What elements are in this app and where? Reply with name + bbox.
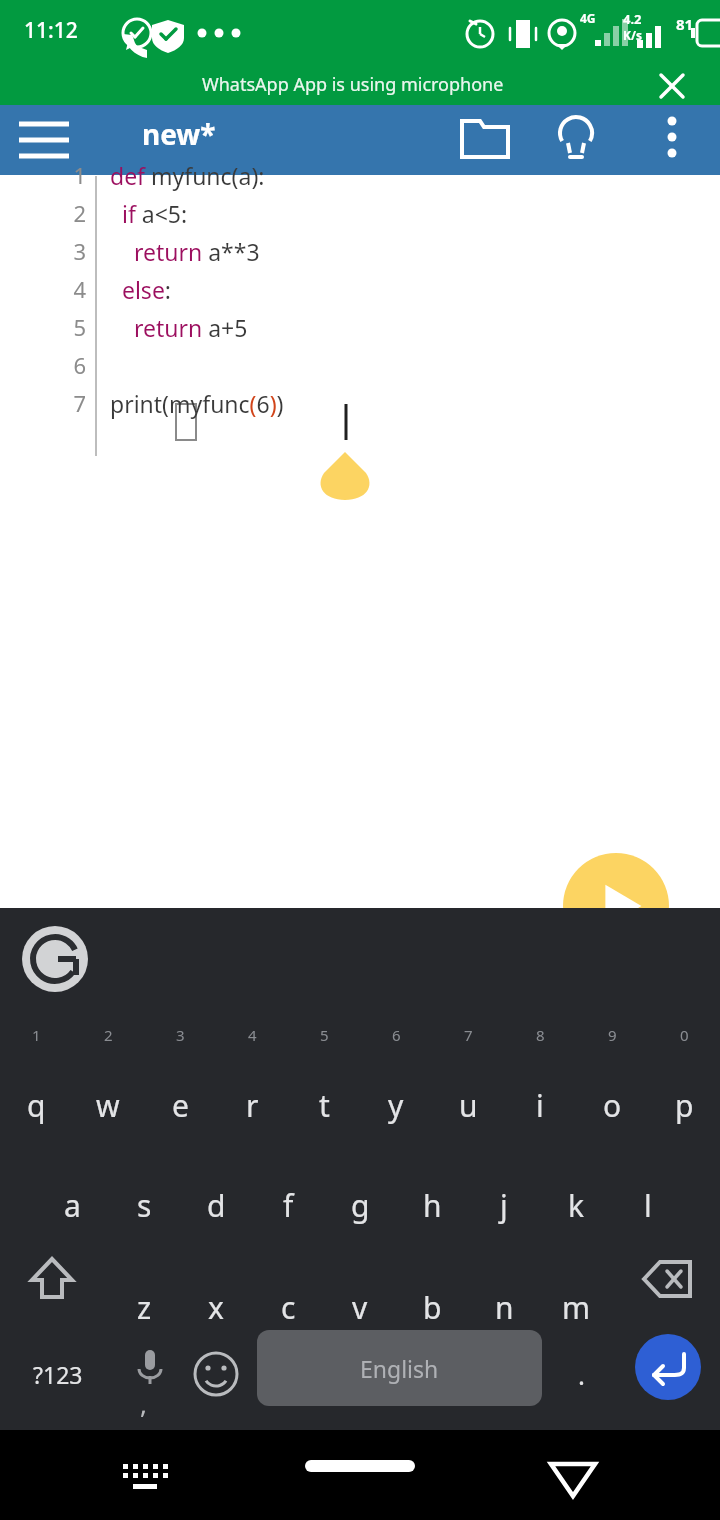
button[interactable]: Hide keyboard: [112, 1442, 178, 1508]
button[interactable]: b: [396, 1267, 468, 1347]
button[interactable]: q: [0, 1065, 72, 1145]
button[interactable]: y: [360, 1065, 432, 1145]
staticText: l: [644, 1185, 652, 1226]
button[interactable]: c: [252, 1267, 324, 1347]
staticText: ,: [140, 1386, 147, 1421]
staticText: 8: [536, 1025, 545, 1045]
button[interactable]: Shift: [14, 1241, 90, 1317]
staticText: 1: [32, 1025, 41, 1045]
staticText: b: [423, 1287, 442, 1328]
staticText: 4: [248, 1025, 257, 1045]
button[interactable]: m: [540, 1267, 612, 1347]
button[interactable]: t: [288, 1065, 360, 1145]
staticText: i: [536, 1085, 544, 1126]
button[interactable]: z: [108, 1267, 180, 1347]
staticText: m: [562, 1287, 591, 1328]
staticText: .: [578, 1357, 585, 1392]
staticText: 7: [62, 388, 86, 418]
button[interactable]: o: [576, 1065, 648, 1145]
button[interactable]: .: [548, 1336, 614, 1412]
button[interactable]: i: [504, 1065, 576, 1145]
staticText: 5: [62, 312, 86, 342]
staticText: 6: [62, 350, 86, 380]
staticText: 6: [392, 1025, 401, 1045]
staticText: 9: [608, 1025, 617, 1045]
button[interactable]: p: [648, 1065, 720, 1145]
button[interactable]: x: [180, 1267, 252, 1347]
staticText: n: [495, 1287, 514, 1328]
button[interactable]: Menu: [14, 110, 74, 170]
staticText: u: [459, 1085, 478, 1126]
button[interactable]: Hints: [546, 105, 606, 165]
staticText: K/s: [623, 27, 642, 43]
staticText: ?123: [33, 1359, 83, 1390]
staticText: new*: [142, 115, 216, 153]
button[interactable]: n: [468, 1267, 540, 1347]
button[interactable]: English: [257, 1330, 542, 1406]
button[interactable]: Back: [540, 1442, 606, 1508]
staticText: d: [207, 1185, 226, 1226]
staticText: f: [283, 1185, 294, 1226]
staticText: 4: [62, 274, 86, 304]
staticText: s: [137, 1185, 152, 1226]
staticText: w: [96, 1085, 120, 1126]
staticText: 0: [680, 1025, 689, 1045]
button[interactable]: Home: [305, 1460, 415, 1472]
staticText: if a<5:: [110, 198, 188, 229]
staticText: c: [281, 1287, 296, 1328]
button[interactable]: Backspace: [630, 1241, 706, 1317]
button[interactable]: v: [324, 1267, 396, 1347]
button[interactable]: Run: [563, 853, 669, 959]
staticText: p: [675, 1085, 694, 1126]
button[interactable]: Voice input: [112, 1336, 188, 1412]
button[interactable]: Enter: [635, 1334, 701, 1400]
staticText: WhatsApp App is using microphone: [202, 72, 504, 97]
staticText: r: [246, 1085, 259, 1126]
staticText: j: [500, 1185, 508, 1226]
button[interactable]: s: [108, 1165, 180, 1245]
button[interactable]: f: [252, 1165, 324, 1245]
staticText: 5: [320, 1025, 329, 1045]
staticText: else:: [110, 274, 172, 305]
button[interactable]: e: [144, 1065, 216, 1145]
staticText: a: [64, 1185, 81, 1226]
staticText: e: [172, 1085, 189, 1126]
staticText: q: [27, 1085, 46, 1126]
staticText: return a**3: [110, 236, 260, 267]
staticText: 1: [62, 160, 86, 190]
button[interactable]: u: [432, 1065, 504, 1145]
button[interactable]: k: [540, 1165, 612, 1245]
staticText: 3: [62, 236, 86, 266]
staticText: z: [137, 1287, 152, 1328]
staticText: def myfunc(a):: [110, 160, 265, 191]
staticText: English: [360, 1353, 439, 1384]
staticText: 4G: [580, 10, 596, 26]
button[interactable]: h: [396, 1165, 468, 1245]
staticText: 2: [104, 1025, 113, 1045]
staticText: 7: [464, 1025, 473, 1045]
staticText: k: [568, 1185, 585, 1226]
button[interactable]: w: [72, 1065, 144, 1145]
button[interactable]: l: [612, 1165, 684, 1245]
staticText: y: [388, 1085, 404, 1126]
button[interactable]: j: [468, 1165, 540, 1245]
staticText: 3: [176, 1025, 185, 1045]
button[interactable]: a: [36, 1165, 108, 1245]
button[interactable]: Grammarly: [22, 926, 88, 992]
button[interactable]: Emoji: [178, 1336, 254, 1412]
button[interactable]: Dismiss notification: [648, 62, 696, 110]
button[interactable]: r: [216, 1065, 288, 1145]
staticText: t: [319, 1085, 330, 1126]
button[interactable]: g: [324, 1165, 396, 1245]
button[interactable]: d: [180, 1165, 252, 1245]
button[interactable]: Open file: [450, 105, 510, 165]
staticText: return a+5: [110, 312, 248, 343]
button[interactable]: ?123: [8, 1336, 108, 1412]
staticText: x: [208, 1287, 224, 1328]
staticText: 2: [62, 198, 86, 228]
button[interactable]: More options: [642, 105, 702, 165]
staticText: g: [351, 1185, 370, 1226]
staticText: h: [423, 1185, 442, 1226]
staticText: print(myfunc(6)): [110, 388, 284, 419]
staticText: 81: [676, 14, 694, 34]
